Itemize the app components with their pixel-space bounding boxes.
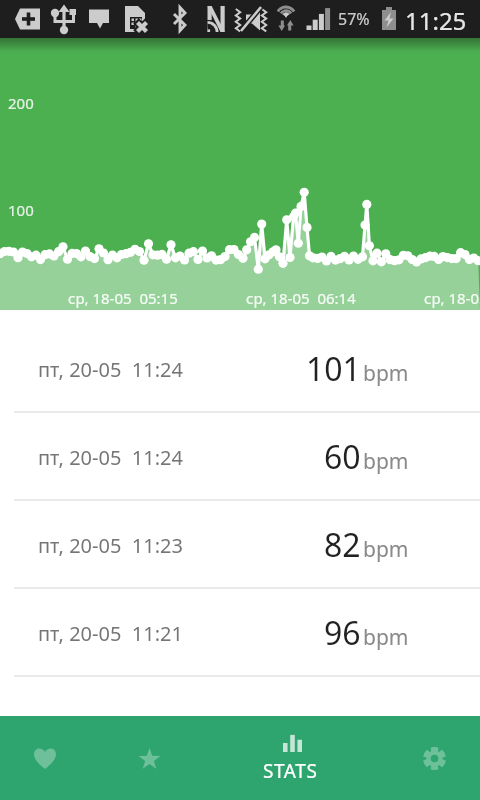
staticText: 100: [8, 200, 34, 220]
button[interactable]: пт, 20-05 11:21: [0, 589, 480, 677]
button[interactable]: [210, 716, 374, 800]
staticText: bpm: [363, 447, 409, 476]
staticText: 57%: [338, 8, 370, 30]
staticText: пт, 20-05 11:21: [38, 620, 183, 647]
staticText: пт, 20-05 11:24: [38, 444, 183, 471]
button[interactable]: Settings: [374, 716, 480, 800]
staticText: пт, 20-05 11:23: [38, 532, 183, 559]
button[interactable]: пт, 20-05 11:23: [0, 501, 480, 589]
button[interactable]: пт, 20-05 11:24: [0, 325, 480, 413]
staticText: 96: [324, 611, 361, 655]
staticText: bpm: [363, 359, 409, 388]
staticText: ср, 18-05 05:15: [68, 288, 178, 308]
button[interactable]: Favorites: [90, 716, 210, 800]
staticText: 101: [306, 347, 361, 391]
staticText: 200: [8, 93, 34, 113]
staticText: 11:25: [405, 4, 467, 37]
staticText: bpm: [363, 623, 409, 652]
button[interactable]: пт, 20-05 11:24: [0, 413, 480, 501]
staticText: bpm: [363, 535, 409, 564]
staticText: ср, 18-05 07:13: [424, 288, 480, 308]
button[interactable]: Heart rate: [0, 716, 90, 800]
staticText: STATS: [263, 758, 318, 784]
staticText: пт, 20-05 11:24: [38, 356, 183, 383]
staticText: 82: [324, 523, 361, 567]
staticText: ср, 18-05 06:14: [246, 288, 356, 308]
staticText: 60: [324, 435, 361, 479]
